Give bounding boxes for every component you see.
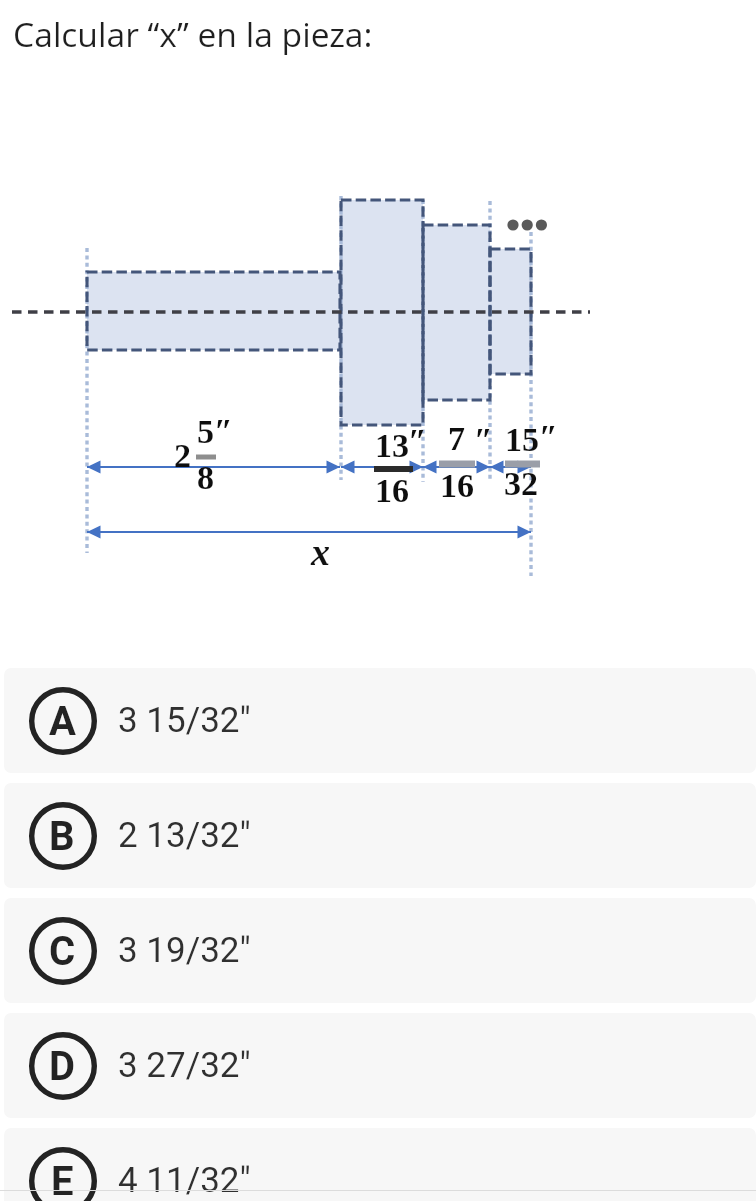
button[interactable]: Option B: 2 13/32": [4, 783, 756, 888]
staticText: D: [49, 1043, 76, 1090]
staticText: ″: [408, 422, 427, 460]
staticText: 16: [440, 467, 474, 505]
staticText: 3 19/32": [118, 930, 251, 971]
button[interactable]: Option E: 4 11/32": [4, 1128, 756, 1201]
staticText: 5: [197, 413, 214, 451]
staticText: ″: [539, 418, 558, 456]
staticText: 15: [505, 421, 539, 459]
staticText: 2: [174, 437, 191, 475]
staticText: 16: [375, 472, 409, 510]
staticText: E: [51, 1158, 74, 1201]
staticText: ″: [214, 412, 233, 450]
button[interactable]: Option D: 3 27/32": [4, 1013, 756, 1118]
staticText: 3 27/32": [118, 1045, 251, 1086]
staticText: 8: [197, 459, 214, 497]
staticText: B: [49, 813, 75, 860]
staticText: x: [311, 531, 330, 573]
staticText: 3 15/32": [118, 700, 251, 741]
staticText: A: [49, 698, 76, 745]
button[interactable]: Option A: 3 15/32": [4, 668, 756, 773]
button[interactable]: Option C: 3 19/32": [4, 898, 756, 1003]
staticText: 2 13/32": [118, 815, 251, 856]
staticText: ″: [474, 421, 493, 459]
staticText: 32: [504, 465, 538, 503]
staticText: 7: [448, 420, 465, 458]
staticText: Calcular “x” en la pieza:: [13, 11, 373, 57]
staticText: 13: [375, 427, 409, 465]
staticText: 4 11/32": [118, 1160, 251, 1201]
staticText: C: [49, 928, 76, 975]
